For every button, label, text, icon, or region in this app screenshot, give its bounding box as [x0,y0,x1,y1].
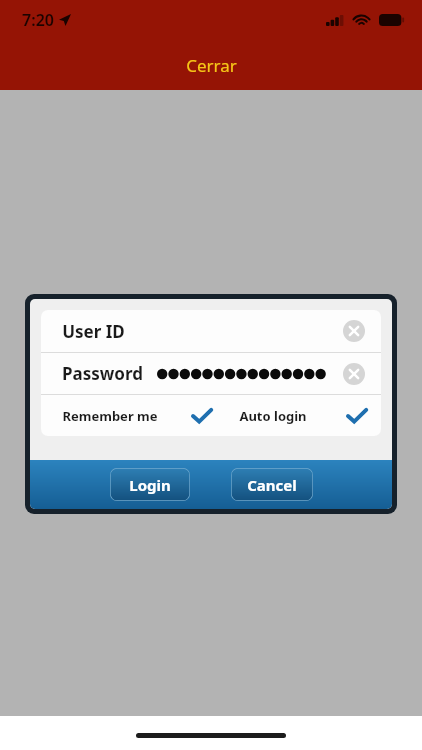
button[interactable]: Password [41,353,381,394]
staticText: 7:20 [22,9,54,31]
button[interactable]: Cerrar [174,52,249,79]
staticText: Login [129,475,171,495]
button[interactable]: Clear text [339,316,369,346]
staticText: User ID [62,320,125,343]
button[interactable]: Cancel [231,468,313,501]
button[interactable]: Auto login [239,407,367,425]
staticText: Auto login [239,407,307,425]
staticText: Remember me [62,407,158,425]
button[interactable]: User ID [41,310,381,352]
button[interactable]: Login [110,468,190,501]
button[interactable]: Remember me [62,407,212,425]
staticText: Cerrar [186,54,237,77]
staticText: Cancel [247,475,297,495]
staticText: Password [62,362,143,385]
button[interactable]: Clear text [339,359,369,389]
